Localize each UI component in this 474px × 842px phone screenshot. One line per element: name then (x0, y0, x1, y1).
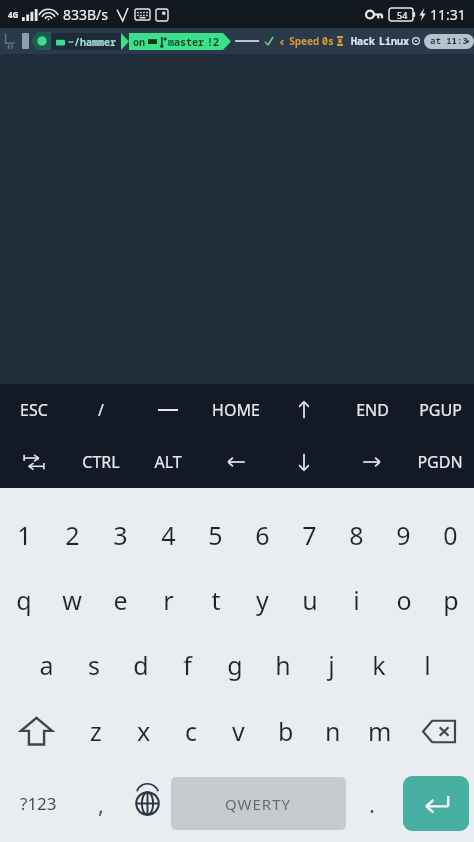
staticText: u (302, 583, 318, 617)
staticText: o (396, 583, 412, 617)
staticText: Speed (289, 34, 319, 48)
staticText: m (368, 714, 392, 748)
staticText: i (353, 583, 360, 617)
button[interactable]: PGUP (406, 384, 474, 436)
button[interactable]: CTRL (67, 436, 134, 488)
button[interactable]: Shift (0, 697, 72, 765)
staticText: / (98, 399, 104, 421)
staticText: b (278, 714, 294, 748)
button[interactable]: c (168, 697, 215, 765)
staticText: !2 (207, 35, 219, 49)
button[interactable]: g (211, 632, 259, 697)
button[interactable]: Arrow right (338, 436, 406, 488)
button[interactable]: Backspace (403, 697, 474, 765)
button[interactable]: 4 (144, 502, 192, 567)
staticText: ‹ (278, 32, 286, 50)
button[interactable]: q (0, 567, 48, 632)
button[interactable]: 6 (239, 502, 286, 567)
staticText: d (133, 648, 149, 682)
staticText: . (369, 789, 375, 819)
button[interactable]: 9 (380, 502, 427, 567)
button[interactable]: END (338, 384, 406, 436)
staticText: ~/hammer (68, 35, 116, 49)
button[interactable]: Change language (124, 765, 171, 842)
button[interactable]: QWERTY (171, 777, 346, 830)
staticText: a (39, 648, 54, 682)
button[interactable]: j (307, 632, 355, 697)
staticText: 3 (113, 518, 128, 552)
button[interactable]: f (164, 632, 211, 697)
button[interactable]: x (120, 697, 168, 765)
button[interactable]: k (355, 632, 403, 697)
button[interactable]: d (117, 632, 164, 697)
staticText: w (62, 583, 82, 617)
staticText: 54 (397, 9, 408, 21)
button[interactable]: 7 (286, 502, 333, 567)
staticText: v (232, 714, 245, 748)
staticText: 833B/s (63, 5, 109, 24)
button[interactable]: PGDN (406, 436, 474, 488)
button[interactable]: Dash (134, 384, 202, 436)
staticText: x (137, 714, 151, 748)
button[interactable]: 1 (0, 502, 48, 567)
button[interactable]: i (333, 567, 380, 632)
button[interactable]: u (286, 567, 333, 632)
button[interactable]: w (48, 567, 96, 632)
button[interactable]: n (309, 697, 356, 765)
button[interactable]: Tab (0, 436, 67, 488)
button[interactable]: HOME (202, 384, 270, 436)
staticText: Linux (379, 34, 409, 48)
staticText: PGDN (417, 451, 463, 473)
staticText: f (183, 648, 192, 682)
button[interactable]: ALT (134, 436, 202, 488)
staticText: h (275, 648, 291, 682)
button[interactable]: y (239, 567, 286, 632)
staticText: c (185, 714, 198, 748)
staticText: e (113, 583, 128, 617)
staticText: 1 (17, 518, 32, 552)
button[interactable]: 3 (96, 502, 144, 567)
button[interactable]: 2 (48, 502, 96, 567)
staticText: 8 (349, 518, 364, 552)
staticText: 0 (443, 518, 458, 552)
button[interactable]: Arrow down (270, 436, 338, 488)
staticText: q (16, 583, 32, 617)
button[interactable]: 8 (333, 502, 380, 567)
button[interactable]: a (23, 632, 70, 697)
button[interactable]: e (96, 567, 144, 632)
button[interactable]: l (403, 632, 451, 697)
button[interactable]: z (72, 697, 120, 765)
button[interactable]: ESC (0, 384, 67, 436)
button[interactable]: b (262, 697, 309, 765)
staticText: g (227, 648, 243, 682)
staticText: 4 (161, 518, 176, 552)
button[interactable]: Arrow up (270, 384, 338, 436)
button[interactable]: , (77, 765, 124, 842)
staticText: END (356, 399, 389, 421)
button[interactable]: h (259, 632, 307, 697)
button[interactable]: s (70, 632, 117, 697)
button[interactable]: o (380, 567, 427, 632)
button[interactable]: Arrow left (202, 436, 270, 488)
staticText: 5 (208, 518, 223, 552)
staticText: CTRL (82, 451, 120, 473)
staticText: p (443, 583, 459, 617)
button[interactable]: 0 (427, 502, 474, 567)
button[interactable]: t (192, 567, 239, 632)
button[interactable]: 5 (192, 502, 239, 567)
staticText: ALT (154, 451, 182, 473)
staticText: Hack (351, 34, 375, 48)
button[interactable]: v (215, 697, 262, 765)
button[interactable]: ?123 (0, 765, 77, 842)
button[interactable]: Enter (403, 776, 469, 831)
staticText: k (372, 648, 386, 682)
button[interactable]: r (144, 567, 192, 632)
button[interactable]: / (67, 384, 134, 436)
staticText: , (98, 789, 104, 819)
staticText: ?123 (20, 792, 57, 815)
button[interactable]: p (427, 567, 474, 632)
staticText: 2 (65, 518, 80, 552)
button[interactable]: m (356, 697, 403, 765)
button[interactable]: . (346, 765, 398, 842)
staticText: t (211, 583, 221, 617)
